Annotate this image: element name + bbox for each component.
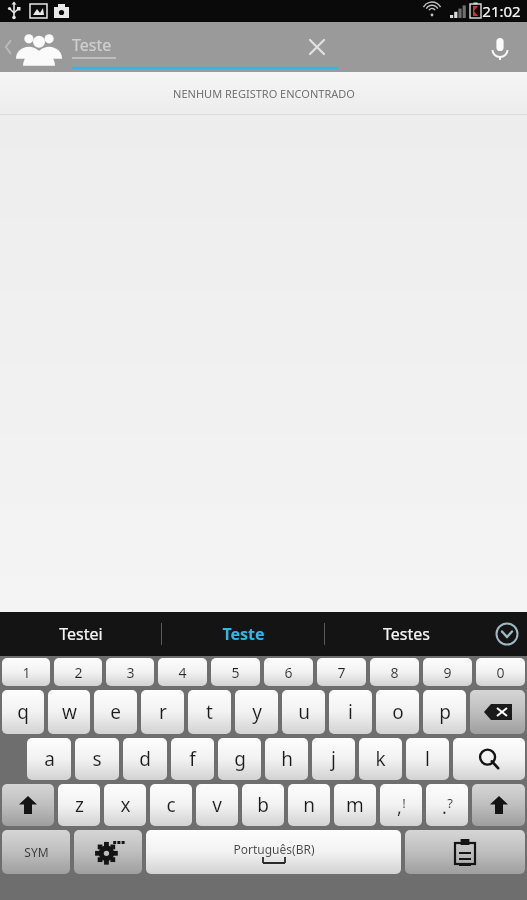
button[interactable]: Português(BR) [146,830,401,874]
staticText: i [348,699,353,725]
staticText: 5 [231,663,240,682]
staticText: b [257,792,269,818]
staticText: x [120,792,131,818]
button[interactable]: o [376,690,419,734]
staticText: f [189,746,196,772]
staticText: s [92,746,102,772]
staticText: 8 [390,663,399,682]
button[interactable]: Back [0,22,65,72]
button[interactable] [453,738,525,780]
staticText: NENHUM REGISTRO ENCONTRADO [173,86,355,101]
button[interactable]: Clear search [296,22,338,72]
button[interactable] [405,830,525,874]
button[interactable]: 1 [2,658,50,686]
button[interactable] [472,784,525,826]
button[interactable]: b [242,784,284,826]
staticText: d [139,746,151,772]
staticText: a [44,746,55,772]
staticText: 3 [126,663,135,682]
staticText: 6 [284,663,293,682]
button[interactable]: SYM [2,830,70,874]
button[interactable]: e [94,690,137,734]
button[interactable]: 7 [317,658,366,686]
staticText: ! [402,794,406,812]
staticText: z [75,792,84,818]
button[interactable] [470,690,525,734]
button[interactable]: i [329,690,372,734]
staticText: Teste [72,34,112,56]
button[interactable]: n [288,784,330,826]
staticText: k [375,746,386,772]
button[interactable]: 6 [264,658,313,686]
button[interactable]: j [312,738,355,780]
staticText: v [212,792,222,818]
button[interactable]: w [48,690,90,734]
button[interactable]: , [380,784,422,826]
button[interactable]: c [150,784,192,826]
button[interactable] [74,830,142,874]
staticText: Testei [59,623,103,645]
button[interactable]: Teste [162,612,324,656]
staticText: p [439,699,451,725]
button[interactable]: d [123,738,167,780]
staticText: u [298,699,310,725]
button[interactable]: 2 [54,658,102,686]
button[interactable]: t [188,690,231,734]
button[interactable]: r [141,690,184,734]
button[interactable]: g [218,738,261,780]
button[interactable]: v [196,784,238,826]
staticText: r [159,699,167,725]
button[interactable]: . [426,784,468,826]
staticText: y [252,699,262,725]
button[interactable]: y [235,690,278,734]
button[interactable]: 3 [106,658,154,686]
button[interactable]: u [282,690,325,734]
button[interactable]: 9 [423,658,472,686]
staticText: t [206,699,213,725]
staticText: h [281,746,293,772]
button[interactable]: f [171,738,214,780]
button[interactable]: x [104,784,146,826]
button[interactable]: q [2,690,44,734]
staticText: , [397,795,402,820]
staticText: 21:02 [482,1,521,21]
staticText: o [392,699,404,725]
button[interactable]: s [75,738,119,780]
staticText: Teste [222,623,265,645]
staticText: ? [447,794,453,812]
staticText: 1 [22,663,31,682]
button[interactable]: h [265,738,308,780]
button[interactable] [2,784,54,826]
button[interactable]: Testei [0,612,161,656]
button[interactable]: 4 [158,658,207,686]
button[interactable]: 0 [476,658,525,686]
staticText: SYM [24,844,49,860]
staticText: m [346,792,364,818]
button[interactable]: Testes [325,612,487,656]
button[interactable]: Expand suggestions [487,612,527,656]
staticText: 0 [496,663,505,682]
button[interactable]: 8 [370,658,419,686]
button[interactable]: 5 [211,658,260,686]
button[interactable]: k [359,738,402,780]
staticText: q [17,699,29,725]
staticText: 9 [443,663,452,682]
staticText: Português(BR) [233,841,315,857]
staticText: n [303,792,315,818]
staticText: g [234,746,246,772]
button[interactable]: a [27,738,71,780]
button[interactable]: l [406,738,449,780]
staticText: c [166,792,176,818]
staticText: Testes [383,623,430,645]
staticText: e [110,699,121,725]
staticText: l [425,746,430,772]
staticText: 2 [74,663,83,682]
button[interactable]: p [423,690,466,734]
button[interactable]: m [334,784,376,826]
staticText: w [62,699,77,725]
button[interactable]: Voice search [473,22,527,72]
button[interactable]: z [58,784,100,826]
button[interactable]: Teste [72,22,337,72]
staticText: 7 [337,663,346,682]
staticText: 4 [178,663,187,682]
